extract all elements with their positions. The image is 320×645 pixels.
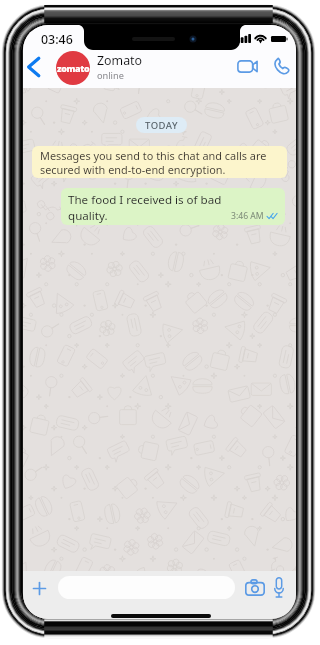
button[interactable]: Voice message: [268, 575, 289, 600]
staticText: The food I received is of bad quality.: [68, 192, 222, 223]
button[interactable]: TODAY: [136, 117, 187, 133]
staticText: 3:46 AM: [231, 210, 264, 222]
button[interactable]: Video call: [233, 45, 261, 88]
button[interactable]: Back: [23, 45, 45, 88]
staticText: 03:46: [41, 31, 73, 48]
staticText: Zomato: [97, 52, 143, 69]
button[interactable]: Attach: [26, 575, 52, 601]
button[interactable]: Camera: [241, 575, 268, 599]
button[interactable]: zomato: [53, 45, 238, 88]
staticText: zomato: [57, 62, 90, 74]
button[interactable]: Voice call: [269, 45, 293, 88]
staticText: online: [97, 69, 124, 82]
staticText: TODAY: [145, 119, 179, 132]
staticText: Messages you send to this chat and calls…: [40, 148, 267, 177]
